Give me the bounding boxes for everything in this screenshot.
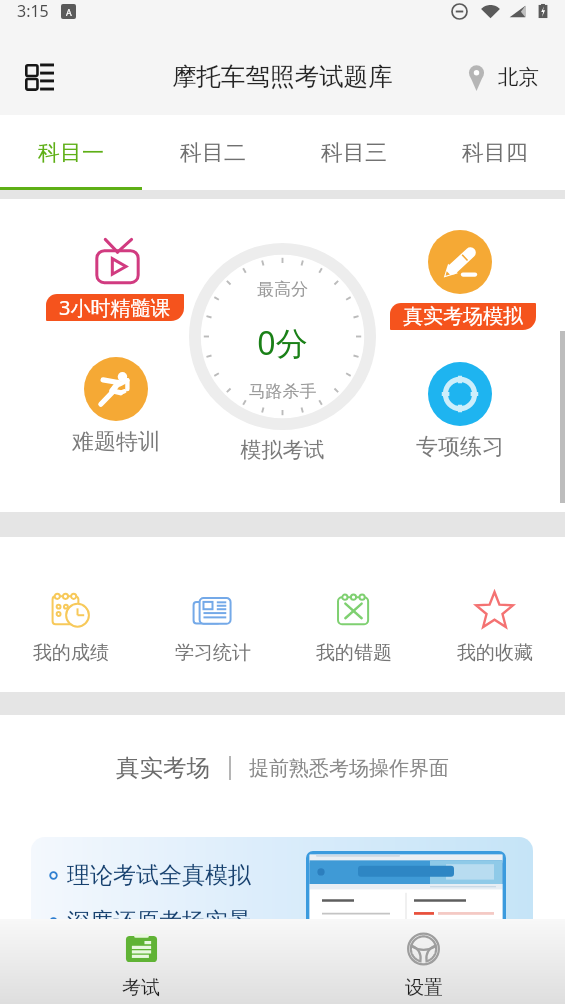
staticText: 专项练习 (410, 433, 510, 461)
staticText: 3小时精髓课 (59, 294, 171, 321)
staticText: 科目二 (180, 139, 246, 167)
button[interactable]: 真实考场模拟 (390, 303, 536, 330)
button[interactable]: 科目三 (283, 115, 424, 190)
staticText: 真实考场 (116, 753, 210, 783)
button[interactable]: 难题特训 (84, 357, 148, 421)
button[interactable]: 学习统计 (142, 537, 283, 665)
button[interactable]: 3小时精髓课 (46, 294, 184, 321)
staticText: 我的错题 (316, 641, 392, 665)
button[interactable]: 我的收藏 (424, 537, 565, 665)
button[interactable]: 科目一 (0, 115, 142, 190)
button[interactable]: 3小时精髓课 (94, 238, 141, 285)
button[interactable]: 理论考试全真模拟 (31, 837, 533, 979)
staticText: 真实考场模拟 (403, 304, 523, 329)
button[interactable]: 科目二 (142, 115, 283, 190)
staticText: 我的收藏 (457, 641, 533, 665)
button[interactable]: 设置 (282, 919, 565, 1004)
button[interactable]: 真实考场模拟 (428, 230, 492, 294)
button[interactable]: 考试 (0, 919, 282, 1004)
staticText: 北京 (498, 64, 539, 90)
staticText: 深度还原考场实景 (67, 907, 251, 936)
staticText: A (66, 6, 72, 18)
staticText: 科目四 (462, 139, 528, 167)
staticText: 3:15 (17, 0, 49, 22)
button[interactable]: Menu (9, 47, 69, 107)
button[interactable]: 科目四 (424, 115, 565, 190)
staticText: 考试 (122, 976, 160, 1000)
staticText: 最高分 (0, 279, 565, 300)
staticText: 模拟考试 (0, 437, 565, 463)
staticText: 理论考试全真模拟 (67, 861, 251, 890)
staticText: 学习统计 (175, 641, 251, 665)
staticText: 摩托车驾照考试题库 (172, 61, 393, 92)
button[interactable]: 北京 (466, 61, 539, 92)
staticText: 设置 (405, 976, 443, 1000)
staticText: 难题特训 (66, 428, 166, 456)
staticText: 我的成绩 (33, 641, 109, 665)
staticText: 提前熟悉考场操作界面 (249, 756, 449, 781)
staticText: 科目三 (321, 139, 387, 167)
staticText: 马路杀手 (0, 381, 565, 402)
button[interactable]: 我的成绩 (0, 537, 142, 665)
staticText: 科目一 (38, 139, 104, 167)
button[interactable]: 我的错题 (283, 537, 424, 665)
button[interactable]: 专项练习 (428, 362, 492, 426)
staticText: 0分 (0, 321, 565, 365)
